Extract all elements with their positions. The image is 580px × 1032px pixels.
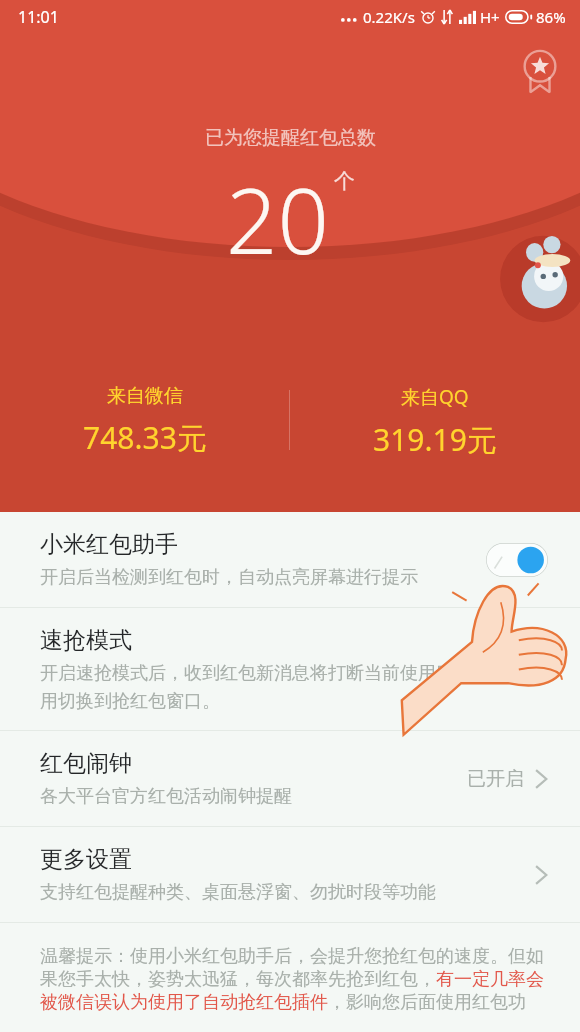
staticText: 被微信误认为使用了自动抢红包插件 [40, 991, 328, 1014]
staticText: 已为您提醒红包总数 [205, 126, 376, 150]
staticText: 红包闹钟 [40, 749, 132, 778]
other: Open [534, 657, 548, 681]
staticText: 来自微信 [107, 384, 183, 408]
staticText: 各大平台官方红包活动闹钟提醒 [40, 785, 292, 808]
staticText: 748.33元 [83, 417, 207, 458]
staticText: 更多设置 [40, 845, 132, 874]
staticText: 已开启 [467, 767, 524, 791]
staticText: 果您手太快，姿势太迅猛，每次都率先抢到红包， [40, 968, 436, 991]
staticText: 支持红包提醒种类、桌面悬浮窗、勿扰时段等功能 [40, 881, 436, 904]
staticText: 0.22K/s [363, 7, 415, 27]
staticText: 小米红包助手 [40, 530, 178, 559]
staticText: ，影响您后面使用红包功 [328, 991, 526, 1014]
button[interactable]: 更多设置 [0, 827, 580, 922]
button[interactable]: 速抢模式 [0, 608, 580, 730]
staticText: 有一定几率会 [436, 968, 544, 991]
staticText: 20 [226, 158, 329, 281]
staticText: 温馨提示：使用小米红包助手后，会提升您抢红包的速度。但如 [40, 945, 544, 968]
other: Open [534, 767, 548, 791]
staticText: 开启速抢模式后，收到红包新消息将打断当前使用应用，后 用切换到抢红包窗口。 [40, 662, 508, 712]
staticText: 11:01 [18, 6, 59, 28]
button[interactable]: Toggle 小米红包助手 [486, 543, 548, 577]
button[interactable]: 红包闹钟 [0, 731, 580, 826]
other: Open [534, 863, 548, 887]
staticText: 319.19元 [373, 419, 497, 460]
button[interactable]: 小米红包助手 [0, 512, 580, 607]
staticText: 速抢模式 [40, 626, 132, 655]
button[interactable]: Achievements [516, 47, 564, 95]
staticText: 个 [334, 168, 355, 194]
staticText: H+ [480, 7, 500, 27]
staticText: 来自QQ [401, 384, 469, 410]
staticText: 开启后当检测到红包时，自动点亮屏幕进行提示 [40, 566, 418, 589]
staticText: 86% [536, 7, 566, 27]
